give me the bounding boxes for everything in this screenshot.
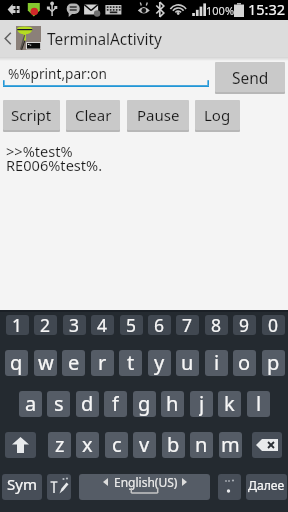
button[interactable]: i bbox=[205, 350, 228, 376]
staticText: 3 bbox=[69, 315, 80, 333]
button[interactable]: x bbox=[76, 432, 99, 458]
staticText: 9 bbox=[239, 315, 250, 333]
button[interactable]: 8 bbox=[205, 315, 228, 335]
staticText: z bbox=[55, 432, 65, 457]
button[interactable]: Punctuation bbox=[218, 474, 241, 500]
button[interactable]: Log bbox=[195, 100, 240, 130]
button[interactable]: Backspace bbox=[252, 432, 282, 458]
staticText: j bbox=[199, 391, 205, 416]
staticText: k bbox=[224, 391, 235, 416]
staticText: English(US) bbox=[114, 474, 178, 490]
button[interactable]: v bbox=[133, 432, 156, 458]
button[interactable]: y bbox=[148, 350, 171, 376]
button[interactable]: Change input method bbox=[47, 474, 71, 500]
staticText: c bbox=[112, 432, 122, 457]
staticText: b bbox=[167, 432, 180, 457]
staticText: 15:32 bbox=[248, 0, 286, 19]
button[interactable]: f bbox=[104, 391, 127, 417]
button[interactable]: d bbox=[76, 391, 99, 417]
button[interactable]: a bbox=[19, 391, 42, 417]
button[interactable]: 9 bbox=[233, 315, 256, 335]
button[interactable]: p bbox=[262, 350, 285, 376]
staticText: 4 bbox=[97, 315, 108, 333]
button[interactable]: Navigate up bbox=[0, 20, 15, 57]
button[interactable]: r bbox=[91, 350, 114, 376]
button[interactable]: o bbox=[233, 350, 256, 376]
staticText: 8 bbox=[211, 315, 222, 333]
button[interactable]: English(US) bbox=[79, 474, 210, 500]
button[interactable]: w bbox=[34, 350, 57, 376]
staticText: TerminalActivity bbox=[47, 29, 162, 50]
staticText: n bbox=[195, 432, 208, 457]
staticText: i bbox=[214, 350, 220, 375]
staticText: q bbox=[10, 350, 23, 375]
button[interactable]: Clear bbox=[66, 100, 120, 130]
staticText: p bbox=[267, 350, 280, 375]
staticText: y bbox=[154, 350, 165, 375]
button[interactable]: 3 bbox=[63, 315, 86, 335]
button[interactable]: t bbox=[119, 350, 142, 376]
button[interactable]: n bbox=[190, 432, 213, 458]
staticText: 0 bbox=[268, 315, 279, 333]
staticText: v bbox=[139, 432, 150, 457]
button[interactable]: z bbox=[48, 432, 71, 458]
staticText: m bbox=[221, 432, 240, 457]
staticText: 2 bbox=[40, 315, 51, 333]
staticText: w bbox=[38, 350, 54, 375]
staticText: e bbox=[68, 350, 80, 375]
staticText: Send bbox=[232, 67, 269, 88]
button[interactable]: 7 bbox=[176, 315, 199, 335]
staticText: u bbox=[181, 350, 194, 375]
button[interactable]: e bbox=[62, 350, 85, 376]
button[interactable]: Script bbox=[3, 100, 60, 130]
button[interactable]: b bbox=[162, 432, 185, 458]
staticText: g bbox=[138, 391, 151, 416]
button[interactable]: 1 bbox=[6, 315, 29, 335]
staticText: 5 bbox=[126, 315, 137, 333]
button[interactable]: Shift bbox=[5, 432, 36, 458]
staticText: h bbox=[166, 391, 179, 416]
staticText: f bbox=[112, 391, 119, 416]
button[interactable]: g bbox=[133, 391, 156, 417]
button[interactable]: 2 bbox=[34, 315, 57, 335]
button[interactable]: 0 bbox=[262, 315, 285, 335]
staticText: Далее bbox=[248, 477, 285, 494]
staticText: a bbox=[25, 391, 37, 416]
button[interactable]: k bbox=[218, 391, 241, 417]
button[interactable]: u bbox=[176, 350, 199, 376]
button[interactable]: 4 bbox=[91, 315, 114, 335]
button[interactable]: 5 bbox=[120, 315, 143, 335]
staticText: t bbox=[127, 350, 135, 375]
staticText: d bbox=[81, 391, 94, 416]
staticText: s bbox=[54, 391, 64, 416]
button[interactable]: j bbox=[190, 391, 213, 417]
button[interactable]: Pause bbox=[127, 100, 189, 130]
button[interactable]: c bbox=[105, 432, 128, 458]
staticText: o bbox=[238, 350, 251, 375]
button[interactable]: s bbox=[47, 391, 70, 417]
button[interactable]: l bbox=[247, 391, 270, 417]
button[interactable]: Далее bbox=[246, 474, 287, 500]
button[interactable]: q bbox=[5, 350, 28, 376]
staticText: RE006%test%. bbox=[6, 155, 103, 175]
staticText: x bbox=[82, 432, 93, 457]
staticText: r bbox=[98, 350, 107, 375]
button[interactable]: m bbox=[219, 432, 242, 458]
staticText: Pause bbox=[137, 105, 180, 125]
staticText: 100% bbox=[206, 3, 235, 18]
staticText: l bbox=[256, 391, 262, 416]
staticText: 7 bbox=[182, 315, 193, 333]
staticText: Script bbox=[11, 105, 52, 125]
button[interactable]: Send bbox=[215, 62, 285, 92]
button[interactable]: 6 bbox=[148, 315, 171, 335]
staticText: 1 bbox=[12, 315, 23, 333]
staticText: Clear bbox=[75, 105, 112, 125]
staticText: 6 bbox=[154, 315, 165, 333]
staticText: %%print,par:on bbox=[8, 64, 107, 83]
button[interactable]: h bbox=[161, 391, 184, 417]
button[interactable]: Sym bbox=[2, 474, 42, 500]
staticText: >>%test% bbox=[6, 141, 73, 161]
staticText: Sym bbox=[7, 474, 37, 494]
staticText: Log bbox=[204, 105, 231, 125]
